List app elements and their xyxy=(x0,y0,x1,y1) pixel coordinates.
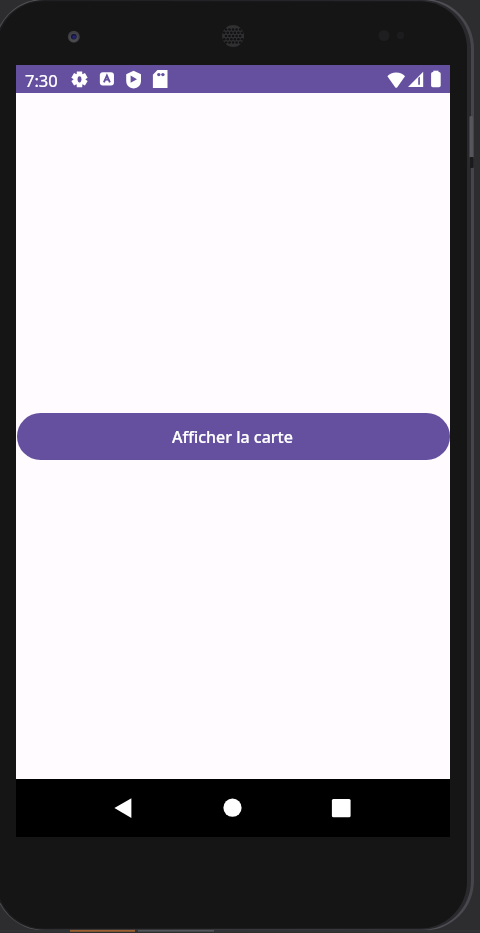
button[interactable]: Back xyxy=(105,793,142,830)
staticText: Afficher la carte xyxy=(172,426,293,448)
button[interactable]: Afficher la carte xyxy=(17,413,450,460)
button[interactable]: Recent apps xyxy=(323,789,360,826)
staticText: 7:30 xyxy=(25,69,58,91)
button[interactable]: Home xyxy=(215,789,252,826)
